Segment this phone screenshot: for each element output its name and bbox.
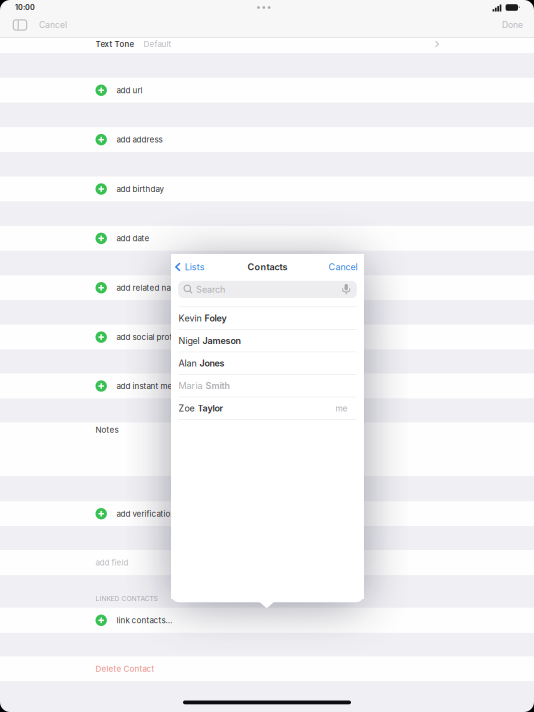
button[interactable]: Show sidebar (12, 15, 28, 35)
button[interactable]: add social profile (0, 325, 534, 350)
staticText: add address (116, 135, 162, 144)
staticText: Nigel (179, 335, 203, 346)
staticText: 10:00 (15, 3, 35, 12)
staticText: add instant message (116, 381, 194, 391)
button[interactable]: Lists (175, 257, 205, 277)
staticText: Contacts (247, 261, 287, 272)
staticText: Text Tone (95, 39, 134, 49)
staticText: add date (116, 233, 149, 243)
button[interactable]: Maria (171, 375, 364, 397)
button[interactable]: Alan (171, 352, 364, 375)
staticText: Delete Contact (95, 664, 154, 674)
button[interactable]: add verification code (0, 501, 534, 526)
button[interactable]: Nigel (171, 330, 364, 352)
staticText: LINKED CONTACTS (95, 594, 157, 603)
staticText: Zoe (179, 403, 198, 414)
staticText: me (335, 403, 347, 413)
button[interactable]: add field (0, 550, 534, 575)
button[interactable]: Kevin (171, 307, 364, 330)
button[interactable]: Text Tone (0, 38, 534, 53)
staticText: Cancel (39, 20, 67, 30)
staticText: Kevin (179, 313, 205, 324)
staticText: Search (196, 284, 225, 295)
staticText: Smith (206, 380, 230, 391)
staticText: add url (116, 85, 142, 95)
staticText: add verification code (116, 509, 197, 519)
staticText: Jameson (203, 335, 241, 346)
button[interactable]: Delete Contact (0, 656, 534, 681)
staticText: Jones (200, 358, 225, 369)
staticText: Cancel (328, 261, 357, 272)
button[interactable]: Zoe (171, 397, 364, 420)
staticText: Done (502, 20, 523, 30)
staticText: Notes (95, 425, 118, 435)
staticText: Alan (179, 358, 200, 369)
staticText: add social profile (116, 332, 181, 342)
button[interactable]: add address (0, 127, 534, 152)
button[interactable]: add instant message (0, 373, 534, 398)
staticText: link contacts… (116, 615, 172, 625)
staticText: Maria (179, 380, 206, 391)
button[interactable]: Done (502, 15, 523, 35)
staticText: Foley (205, 313, 227, 324)
button[interactable]: add date (0, 226, 534, 251)
button[interactable]: add birthday (0, 176, 534, 201)
staticText: add related name (116, 283, 182, 293)
button[interactable]: Cancel (39, 15, 67, 35)
staticText: Default (143, 39, 171, 49)
button[interactable]: Cancel (328, 257, 357, 277)
staticText: Lists (185, 261, 205, 272)
staticText: add field (95, 558, 128, 567)
staticText: add birthday (116, 184, 163, 194)
button[interactable]: add related name (0, 275, 534, 300)
button[interactable]: add url (0, 78, 534, 103)
staticText: Taylor (198, 403, 224, 414)
button[interactable]: link contacts… (0, 608, 534, 633)
button[interactable]: Notes (0, 422, 534, 476)
